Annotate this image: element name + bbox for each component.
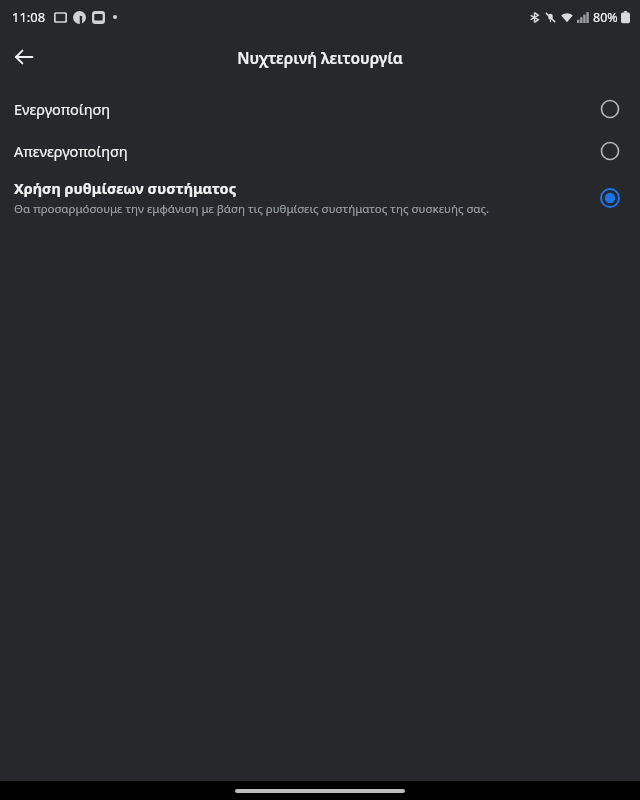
staticText: Θα προσαρμόσουμε την εμφάνιση με βάση τι… [14, 201, 490, 217]
staticText: 11:08 [12, 8, 46, 26]
staticText: 80% [593, 9, 618, 26]
staticText: Χρήση ρυθμίσεων συστήματος [14, 178, 237, 198]
button[interactable]: Ενεργοποίηση [0, 88, 640, 130]
button[interactable]: Απενεργοποίηση [0, 130, 640, 172]
staticText: Απενεργοποίηση [14, 141, 128, 161]
button[interactable]: Back [6, 39, 42, 75]
staticText: Νυχτερινή λειτουργία [237, 47, 403, 68]
button[interactable]: Χρήση ρυθμίσεων συστήματος [0, 172, 640, 223]
staticText: Ενεργοποίηση [14, 99, 111, 119]
